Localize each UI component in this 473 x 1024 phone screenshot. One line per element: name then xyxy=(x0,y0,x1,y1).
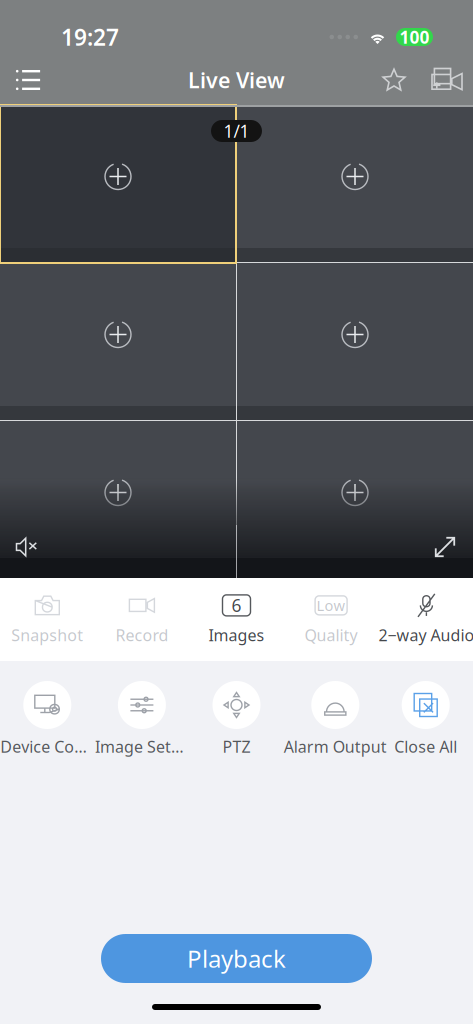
staticText: 6 xyxy=(231,594,241,617)
staticText: Live View xyxy=(188,66,285,94)
staticText: Close All xyxy=(394,736,457,757)
staticText: 100 xyxy=(399,25,429,48)
staticText: Snapshot xyxy=(11,624,83,646)
button[interactable]: Playback xyxy=(101,934,372,983)
staticText: PTZ xyxy=(222,736,250,757)
staticText: Quality xyxy=(305,624,358,646)
button[interactable]: Device Conf... xyxy=(0,681,95,784)
staticText: Device Conf... xyxy=(0,736,94,757)
button[interactable]: 2−way Audio xyxy=(378,578,473,661)
staticText: 2−way Audio xyxy=(378,624,473,646)
button[interactable]: Record xyxy=(95,578,189,661)
button[interactable]: Alarm Output xyxy=(284,681,378,784)
staticText: Image Setti... xyxy=(95,736,189,757)
button[interactable]: Snapshot xyxy=(0,578,95,661)
button[interactable]: Image Setti... xyxy=(95,681,189,784)
staticText: Low xyxy=(317,596,346,615)
button[interactable]: Full screen xyxy=(419,525,471,569)
staticText: 19:27 xyxy=(61,22,119,52)
button[interactable]: Close All xyxy=(378,681,473,784)
button[interactable]: 6 xyxy=(189,578,284,661)
staticText: 1/1 xyxy=(223,119,249,142)
button[interactable]: Low xyxy=(284,578,378,661)
button[interactable]: Add camera xyxy=(422,57,472,103)
button[interactable]: Menu xyxy=(2,57,54,103)
button[interactable]: Favorites xyxy=(366,57,422,103)
button[interactable]: Mute xyxy=(2,525,54,569)
staticText: Record xyxy=(115,624,168,646)
staticText: Images xyxy=(208,624,264,646)
staticText: Alarm Output xyxy=(284,736,387,757)
button[interactable]: PTZ xyxy=(189,681,284,784)
staticText: Playback xyxy=(187,943,286,974)
